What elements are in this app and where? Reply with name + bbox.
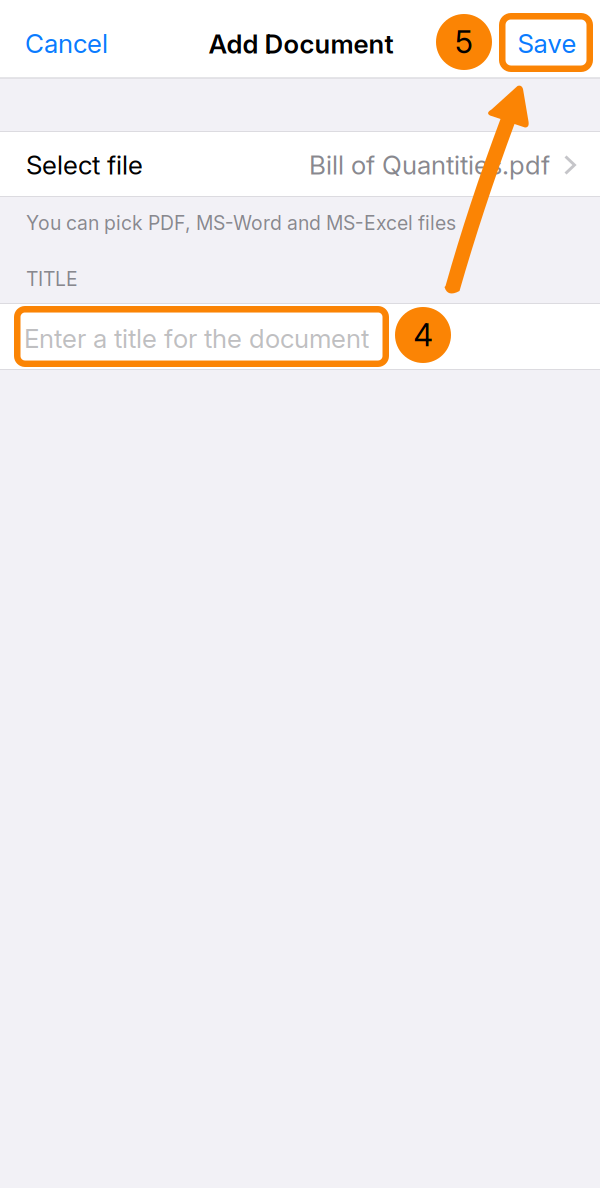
staticText: Save bbox=[517, 28, 576, 59]
button[interactable]: Select file bbox=[0, 132, 600, 196]
staticText: 5 bbox=[455, 23, 473, 60]
staticText: You can pick PDF, MS-Word and MS-Excel f… bbox=[26, 211, 456, 235]
button[interactable]: Cancel bbox=[0, 12, 129, 74]
staticText: Select file bbox=[26, 149, 143, 181]
button[interactable]: Save bbox=[499, 13, 593, 72]
staticText: TITLE bbox=[26, 267, 78, 291]
staticText: Add Document bbox=[208, 28, 393, 60]
staticText: Cancel bbox=[25, 28, 108, 59]
staticText: 4 bbox=[413, 316, 432, 353]
staticText: Bill of Quantities.pdf bbox=[309, 149, 550, 181]
staticText: Enter a title for the document bbox=[24, 323, 369, 354]
button[interactable]: Enter a title for the document bbox=[0, 304, 600, 369]
